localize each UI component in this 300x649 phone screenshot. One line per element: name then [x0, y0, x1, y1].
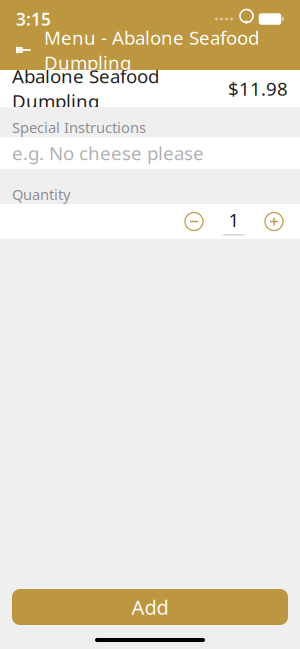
staticText: $11.98 [228, 76, 288, 101]
button[interactable]: Back [14, 40, 34, 60]
staticText: e.g. No cheese please [12, 141, 204, 165]
staticText: Add [131, 594, 168, 620]
staticText: Quantity [12, 184, 70, 204]
button[interactable]: Decrease quantity [180, 207, 208, 235]
button[interactable]: Add [12, 589, 288, 625]
staticText: Special Instructions [12, 117, 146, 137]
staticText: 3:15 [16, 7, 51, 30]
staticText: 1 [228, 207, 239, 232]
button[interactable]: Increase quantity [260, 207, 288, 235]
staticText: Menu - Abalone Seafood Dumpling [44, 25, 259, 75]
staticText: Abalone Seafood Dumpling [12, 64, 159, 113]
